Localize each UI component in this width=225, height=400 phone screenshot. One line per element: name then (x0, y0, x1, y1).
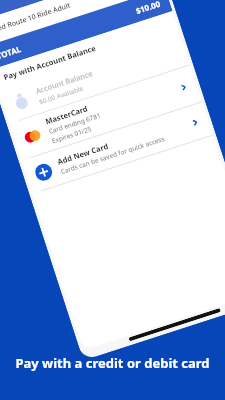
staticText: MasterCard (44, 103, 89, 126)
staticText: Account Balance (34, 68, 94, 96)
button[interactable]: Add New Card (22, 102, 213, 193)
button[interactable]: MasterCard (10, 65, 202, 160)
button[interactable]: Close (0, 0, 1, 15)
staticText: $0.00 Available (38, 84, 84, 106)
staticText: Cards can be saved for quick access (59, 134, 166, 176)
staticText: TOTAL (0, 6, 138, 61)
button[interactable]: Account Balance (0, 32, 190, 123)
staticText: Card ending 6781 (47, 111, 102, 136)
staticText: Fixed Route 10 Ride Adult (0, 0, 103, 36)
staticText: Pay with Account Balance (2, 43, 98, 82)
staticText: Pay with a credit or debit card (15, 354, 210, 372)
staticText: Expires 01/25 (51, 124, 93, 145)
staticText: $10.00 (134, 0, 162, 16)
staticText: Add New Card (56, 141, 110, 167)
